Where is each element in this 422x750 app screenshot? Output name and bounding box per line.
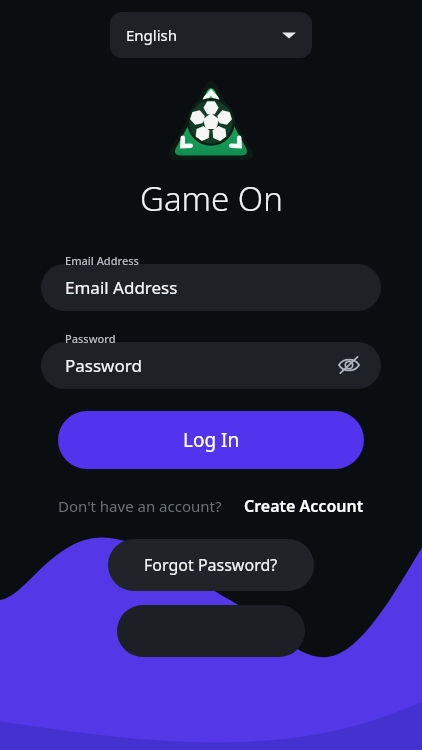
button[interactable]: Forgot Password? (108, 539, 314, 591)
button[interactable]: Create Account (244, 495, 364, 517)
staticText: Password (65, 331, 116, 346)
button[interactable] (41, 342, 381, 389)
staticText: Forgot Password? (144, 554, 278, 576)
staticText: Game On (140, 176, 283, 221)
staticText: Password (65, 354, 142, 377)
staticText: English (126, 25, 178, 45)
staticText: Log In (183, 427, 240, 453)
staticText: Email Address (65, 253, 139, 268)
staticText: Create Account (244, 495, 364, 517)
staticText: Don't have an account? (58, 496, 222, 516)
button[interactable] (117, 605, 305, 657)
staticText: Email Address (65, 276, 178, 299)
button[interactable] (41, 264, 381, 311)
button[interactable]: Log In (58, 411, 364, 469)
button[interactable]: Show password (335, 351, 363, 379)
button[interactable]: English (110, 12, 312, 58)
